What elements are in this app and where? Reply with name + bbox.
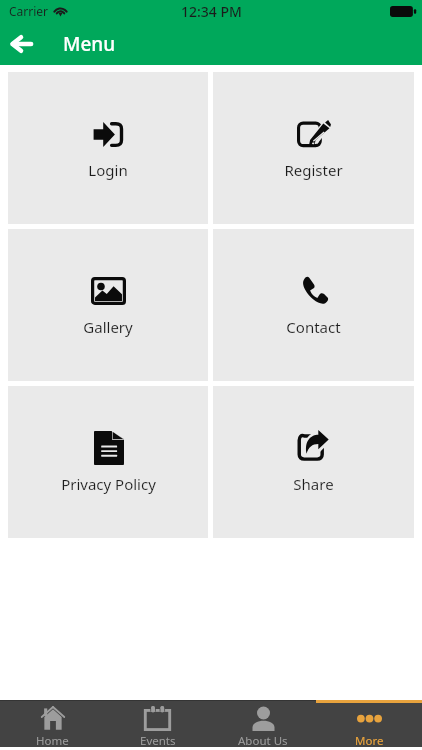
staticText: More	[355, 733, 384, 747]
staticText: Menu	[63, 31, 116, 57]
staticText: Events	[140, 733, 176, 747]
staticText: 12:34 PM	[181, 2, 242, 21]
staticText: Gallery	[83, 317, 133, 337]
button[interactable]: Privacy Policy	[8, 386, 208, 538]
button[interactable]: More	[316, 700, 422, 747]
button[interactable]: Login	[8, 72, 208, 224]
staticText: Home	[36, 733, 69, 747]
button[interactable]: Back	[0, 22, 44, 65]
staticText: Register	[284, 160, 343, 180]
staticText: Carrier	[9, 3, 49, 19]
button[interactable]: Share	[213, 386, 414, 538]
button[interactable]: Register	[213, 72, 414, 224]
button[interactable]: Home	[0, 700, 105, 747]
staticText: Share	[293, 474, 334, 494]
button[interactable]: Gallery	[8, 229, 208, 381]
staticText: Privacy Policy	[61, 474, 156, 494]
button[interactable]: About Us	[210, 700, 316, 747]
button[interactable]: Contact	[213, 229, 414, 381]
staticText: Contact	[286, 317, 341, 337]
button[interactable]: Events	[105, 700, 210, 747]
staticText: Login	[88, 160, 128, 180]
staticText: About Us	[238, 733, 288, 747]
